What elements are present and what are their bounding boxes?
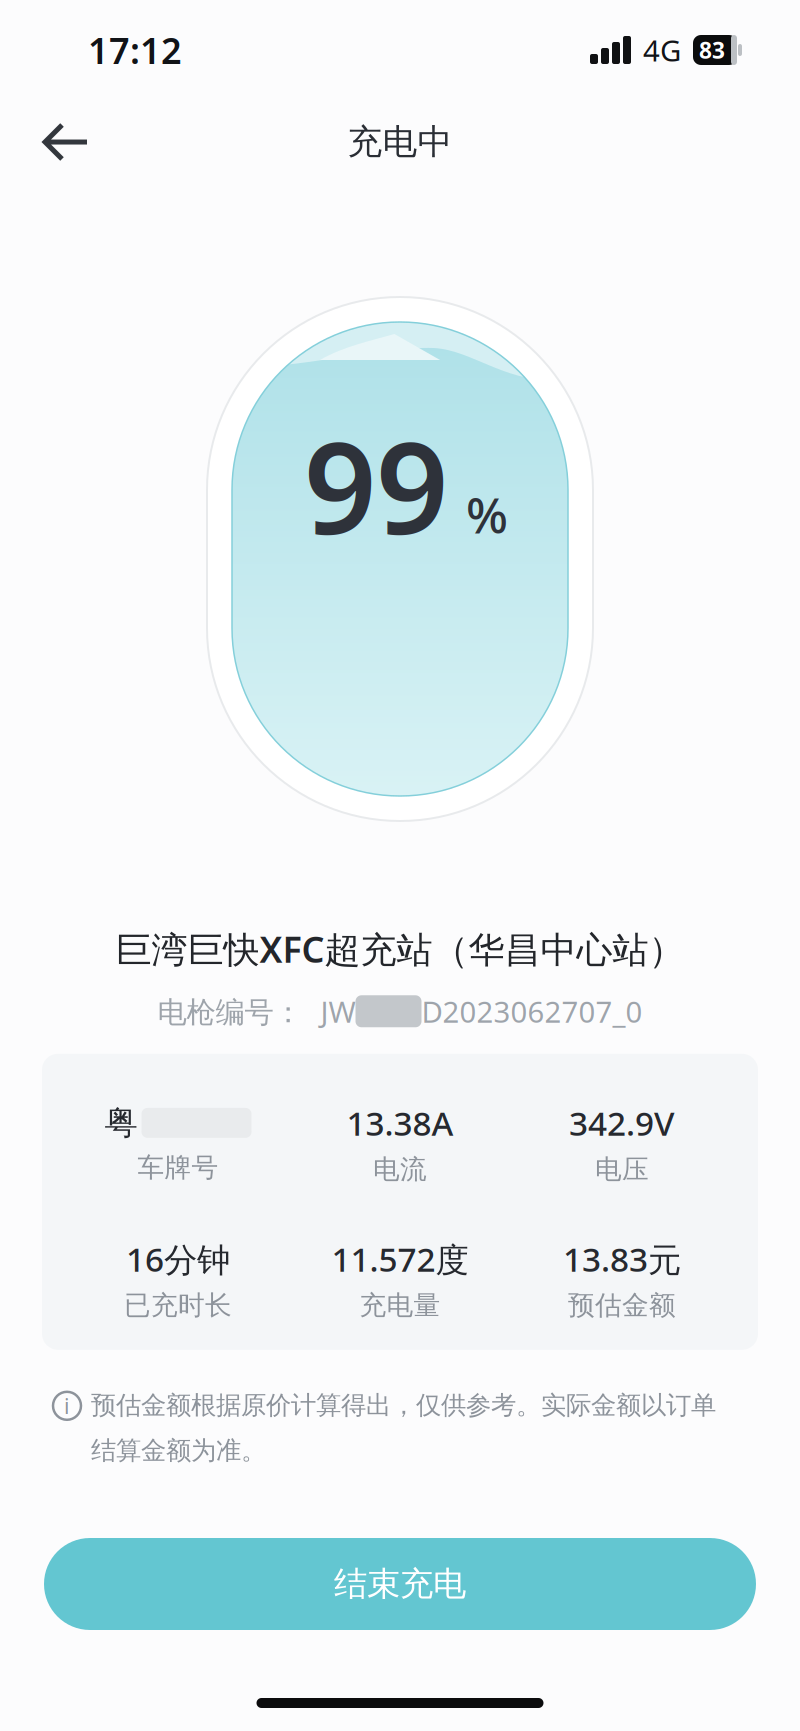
staticText: 16分钟	[126, 1237, 230, 1281]
button[interactable]: 结束充电	[44, 1538, 756, 1630]
staticText: 99	[304, 401, 448, 569]
staticText: 4G	[643, 30, 681, 69]
button[interactable]: Back	[0, 117, 87, 167]
staticText: 已充时长	[124, 1289, 232, 1322]
staticText: i	[64, 1392, 70, 1420]
staticText: 预估金额根据原价计算得出，仅供参考。实际金额以订单	[91, 1390, 716, 1421]
staticText: 预估金额	[568, 1289, 676, 1322]
staticText: 充电量	[359, 1289, 440, 1322]
staticText: 粤	[104, 1102, 137, 1143]
staticText: 13.83元	[563, 1237, 681, 1281]
staticText: 结算金额为准。	[91, 1435, 266, 1466]
staticText: 巨湾巨快XFC超充站（华昌中心站）	[115, 925, 684, 973]
staticText: 结束充电	[334, 1563, 466, 1604]
staticText: %	[466, 482, 508, 547]
staticText: 电流	[373, 1153, 427, 1186]
staticText: 车牌号	[137, 1151, 218, 1184]
staticText: 342.9V	[569, 1101, 675, 1145]
staticText: 13.38A	[346, 1101, 453, 1145]
staticText: 17:12	[88, 26, 182, 74]
staticText: 充电中	[347, 121, 452, 163]
staticText: D2023062707_0	[421, 992, 642, 1031]
staticText: 11.572度	[331, 1237, 468, 1281]
staticText: 电压	[595, 1153, 649, 1186]
staticText: 83	[699, 35, 725, 65]
staticText: 电枪编号： JW	[157, 992, 355, 1031]
